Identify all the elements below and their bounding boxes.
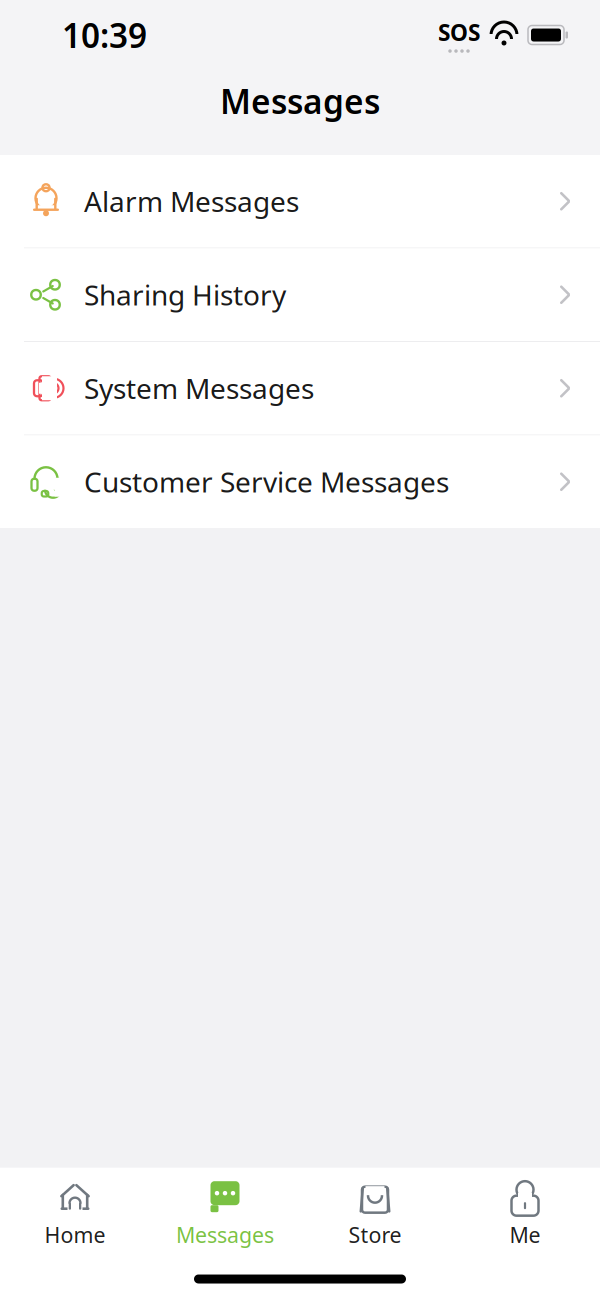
button[interactable]: Store (300, 1168, 450, 1259)
button[interactable]: Customer Service Messages (0, 435, 600, 528)
staticText: Sharing History (84, 276, 286, 313)
staticText: SOS (438, 17, 480, 47)
staticText: Home (44, 1221, 105, 1249)
button[interactable]: Sharing History (0, 248, 600, 342)
staticText: Me (509, 1221, 540, 1249)
staticText: Messages (176, 1221, 274, 1249)
staticText: Customer Service Messages (84, 463, 449, 500)
staticText: Store (348, 1221, 401, 1249)
button[interactable]: Alarm Messages (0, 155, 600, 248)
button[interactable]: Messages (150, 1168, 300, 1259)
staticText: Messages (220, 79, 380, 123)
button[interactable]: Me (450, 1168, 600, 1259)
staticText: System Messages (84, 370, 314, 407)
staticText: 10:39 (62, 13, 147, 57)
button[interactable]: Home (0, 1168, 150, 1259)
staticText: Alarm Messages (84, 183, 299, 220)
button[interactable]: System Messages (0, 342, 600, 435)
